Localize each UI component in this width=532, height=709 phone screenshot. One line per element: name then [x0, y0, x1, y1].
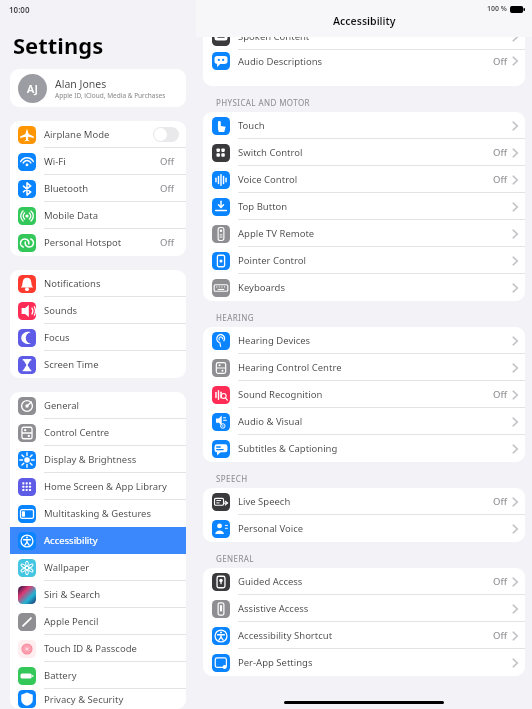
button[interactable]: Wi-Fi	[10, 148, 186, 175]
staticText: SPEECH	[216, 473, 248, 484]
button[interactable]: Pointer Control	[203, 247, 525, 274]
staticText: 100 %	[487, 4, 507, 14]
button[interactable]: Audio & Visual	[203, 408, 525, 435]
button[interactable]: Display & Brightness	[10, 446, 186, 473]
button[interactable]: Wallpaper	[10, 554, 186, 581]
staticText: Off	[493, 173, 507, 186]
staticText: Accessibility Shortcut	[238, 629, 333, 642]
staticText: Control Centre	[44, 426, 110, 439]
button[interactable]: Accessibility	[10, 527, 186, 554]
button[interactable]: AJ	[18, 69, 178, 107]
button[interactable]: Accessibility Shortcut	[203, 622, 525, 649]
staticText: Apple Pencil	[44, 615, 99, 628]
staticText: Home Screen & App Library	[44, 480, 167, 493]
staticText: Apple TV Remote	[238, 227, 315, 240]
button[interactable]: Personal Voice	[203, 515, 525, 542]
staticText: Live Speech	[238, 495, 291, 508]
staticText: Keyboards	[238, 281, 285, 294]
button[interactable]: Sounds	[10, 297, 186, 324]
staticText: Audio Descriptions	[238, 55, 323, 68]
staticText: Accessibility	[44, 534, 98, 547]
staticText: General	[44, 399, 80, 412]
button[interactable]: Guided Access	[203, 568, 525, 595]
staticText: HEARING	[216, 312, 254, 323]
staticText: Notifications	[44, 277, 101, 290]
staticText: Alan Jones	[55, 77, 107, 91]
button[interactable]: General	[10, 392, 186, 419]
button[interactable]: Screen Time	[10, 351, 186, 378]
button[interactable]: Subtitles & Captioning	[203, 435, 525, 462]
staticText: Off	[160, 236, 174, 249]
staticText: Off	[493, 55, 507, 68]
staticText: Switch Control	[238, 146, 303, 159]
button[interactable]: Keyboards	[203, 274, 525, 301]
staticText: Settings	[13, 30, 104, 60]
button[interactable]: Personal Hotspot	[10, 229, 186, 256]
button[interactable]: Voice Control	[203, 166, 525, 193]
staticText: AJ	[27, 81, 38, 96]
staticText: Top Button	[238, 200, 288, 213]
staticText: Audio & Visual	[238, 415, 303, 428]
button[interactable]: Notifications	[10, 270, 186, 297]
button[interactable]: Live Speech	[203, 488, 525, 515]
button[interactable]: Touch	[203, 112, 525, 139]
staticText: Accessibility	[333, 14, 396, 28]
staticText: GENERAL	[216, 553, 254, 564]
staticText: Focus	[44, 331, 70, 344]
staticText: Sound Recognition	[238, 388, 323, 401]
button[interactable]: Airplane Mode	[153, 127, 179, 142]
button[interactable]: Touch ID & Passcode	[10, 635, 186, 662]
staticText: Subtitles & Captioning	[238, 442, 338, 455]
staticText: Battery	[44, 669, 77, 682]
staticText: Pointer Control	[238, 254, 306, 267]
staticText: 10:00	[9, 4, 30, 15]
staticText: Off	[493, 575, 507, 588]
staticText: PHYSICAL AND MOTOR	[216, 97, 310, 108]
button[interactable]: Siri & Search	[10, 581, 186, 608]
staticText: Touch ID & Passcode	[44, 642, 137, 655]
button[interactable]: Sound Recognition	[203, 381, 525, 408]
button[interactable]: Apple TV Remote	[203, 220, 525, 247]
staticText: Airplane Mode	[44, 128, 110, 141]
staticText: Mobile Data	[44, 209, 98, 222]
staticText: Personal Hotspot	[44, 236, 122, 249]
staticText: Guided Access	[238, 575, 303, 588]
staticText: Hearing Control Centre	[238, 361, 342, 374]
button[interactable]: Focus	[10, 324, 186, 351]
button[interactable]: Battery	[10, 662, 186, 689]
button[interactable]: Hearing Control Centre	[203, 354, 525, 381]
staticText: Off	[493, 495, 507, 508]
staticText: Personal Voice	[238, 522, 304, 535]
staticText: Sounds	[44, 304, 78, 317]
button[interactable]: Privacy & Security	[10, 689, 186, 709]
staticText: Off	[493, 388, 507, 401]
staticText: Privacy & Security	[44, 693, 124, 706]
button[interactable]: Assistive Access	[203, 595, 525, 622]
staticText: Off	[493, 146, 507, 159]
staticText: Off	[160, 182, 174, 195]
button[interactable]: Apple Pencil	[10, 608, 186, 635]
staticText: Spoken Content	[238, 37, 310, 43]
staticText: Wi-Fi	[44, 155, 66, 168]
staticText: Multitasking & Gestures	[44, 507, 152, 520]
staticText: Screen Time	[44, 358, 99, 371]
button[interactable]: Hearing Devices	[203, 327, 525, 354]
button[interactable]: Mobile Data	[10, 202, 186, 229]
button[interactable]: Switch Control	[203, 139, 525, 166]
staticText: Touch	[238, 119, 265, 132]
staticText: Per-App Settings	[238, 656, 313, 669]
button[interactable]: Home Screen & App Library	[10, 473, 186, 500]
staticText: Off	[160, 155, 174, 168]
button[interactable]: Audio Descriptions	[203, 50, 525, 72]
button[interactable]: Control Centre	[10, 419, 186, 446]
button[interactable]: Airplane Mode	[10, 121, 186, 148]
staticText: Off	[493, 629, 507, 642]
button[interactable]: Per-App Settings	[203, 649, 525, 676]
button[interactable]: Multitasking & Gestures	[10, 500, 186, 527]
button[interactable]: Top Button	[203, 193, 525, 220]
button[interactable]: Spoken Content	[203, 37, 525, 50]
button[interactable]: Bluetooth	[10, 175, 186, 202]
staticText: Siri & Search	[44, 588, 101, 601]
staticText: Assistive Access	[238, 602, 309, 615]
staticText: Hearing Devices	[238, 334, 311, 347]
